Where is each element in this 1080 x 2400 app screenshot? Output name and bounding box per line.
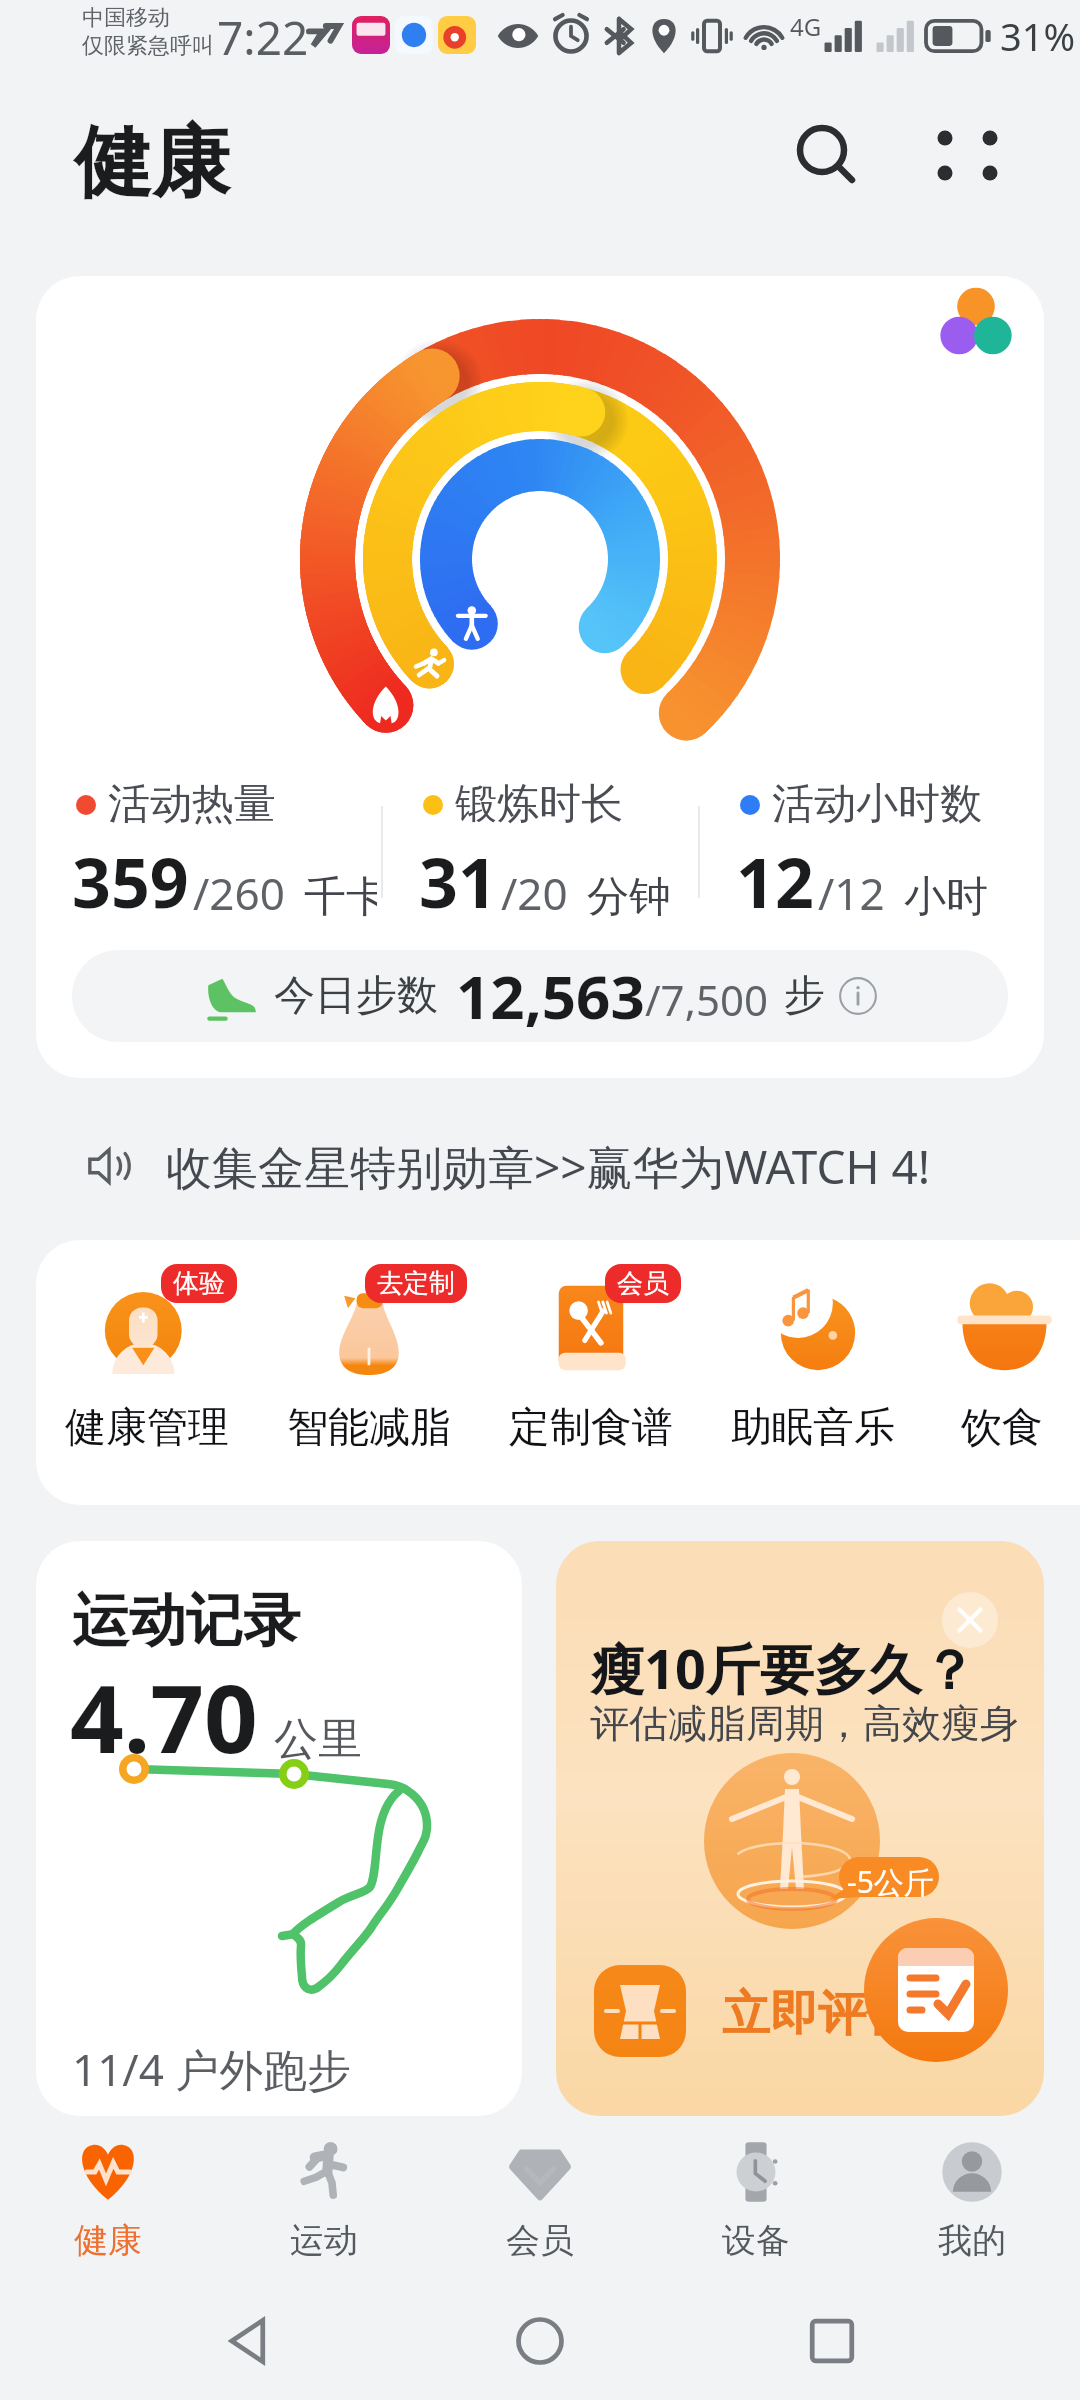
staticText: 31% [1000,10,1076,62]
button[interactable]: Back [206,2298,292,2384]
staticText: 步 [784,970,825,1022]
button[interactable]: 体验 [36,1266,258,1454]
staticText: 评估减脂周期，高效瘦身 [590,1699,1019,1748]
button[interactable]: More options [917,100,1017,200]
staticText: 31 [419,835,497,928]
staticText: 健康管理 [65,1402,229,1454]
staticText: /7,500 [645,971,768,1028]
staticText: 瘦10斤要多久？ [590,1631,976,1705]
button[interactable]: Search [772,100,872,200]
staticText: 运动记录 [72,1585,300,1657]
button[interactable]: 会员 [432,2119,648,2281]
staticText: 我的 [938,2219,1006,2262]
button[interactable]: 瘦10斤要多久？ [556,1541,1044,2116]
staticText: 会员 [617,1267,669,1300]
button[interactable]: 运动记录 [36,1541,522,2116]
button[interactable]: 收集金星特别勋章>>赢华为WATCH 4! [0,1130,1080,1202]
staticText: 设备 [722,2219,790,2262]
staticText: 立即评估 [722,1984,914,2044]
button[interactable]: 运动 [216,2119,432,2281]
staticText: 分钟 [576,866,671,923]
staticText: 活动小时数 [772,778,982,831]
staticText: /20 [501,863,568,923]
staticText: /12 [818,863,885,923]
staticText: 12,563 [456,955,645,1037]
staticText: 饮食 [961,1402,1043,1454]
staticText: 健康 [74,114,230,212]
staticText: 359 [72,835,189,928]
button[interactable]: Health services [36,276,1044,1078]
staticText: 仅限紧急呼叫 [82,32,214,60]
staticText: 定制食谱 [509,1402,673,1454]
staticText: 健康 [74,2219,142,2262]
staticText: 11/4 户外跑步 [72,2039,352,2099]
button[interactable]: 助眠音乐 [702,1266,924,1454]
staticText: 小时 [893,866,988,923]
staticText: /260 [193,863,285,923]
button[interactable]: 我的 [864,2119,1080,2281]
button[interactable]: 饮食 [924,1266,1080,1454]
staticText: 12 [736,835,814,928]
staticText: 会员 [506,2219,574,2262]
staticText: 4.70 [70,1653,258,1781]
staticText: 锻炼时长 [455,778,623,831]
staticText: 去定制 [377,1267,455,1300]
staticText: 收集金星特别勋章>>赢华为WATCH 4! [166,1135,931,1198]
button[interactable]: Close [942,1592,998,1648]
staticText: 中国移动 [82,4,170,32]
staticText: -5公斤 [847,1861,934,1902]
button[interactable]: 去定制 [258,1266,480,1454]
staticText: 4G [790,10,822,43]
button[interactable]: 设备 [648,2119,864,2281]
button[interactable]: 会员 [480,1266,702,1454]
staticText: 今日步数 [274,970,438,1022]
button[interactable]: 健康 [0,2119,216,2281]
staticText: 活动热量 [108,778,276,831]
staticText: 公里 [274,1712,362,1767]
staticText: 运动 [290,2219,358,2262]
button[interactable]: Health services [896,276,1044,366]
button[interactable]: 今日步数 [72,950,1008,1042]
button[interactable]: Recents [789,2298,875,2384]
staticText: 助眠音乐 [731,1402,895,1454]
staticText: 千卡 [293,866,377,923]
staticText: 智能减脂 [287,1402,451,1454]
button[interactable]: Home [497,2298,583,2384]
staticText: 体验 [173,1267,225,1300]
staticText: 7:22 [217,6,309,69]
